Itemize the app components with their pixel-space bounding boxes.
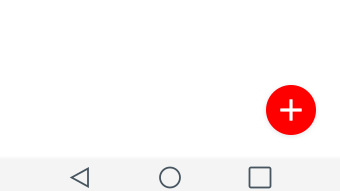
button[interactable]: Add — [266, 85, 316, 135]
button[interactable]: Home — [125, 162, 215, 191]
button[interactable]: Back — [35, 162, 125, 191]
button[interactable]: Recent apps — [215, 162, 305, 191]
